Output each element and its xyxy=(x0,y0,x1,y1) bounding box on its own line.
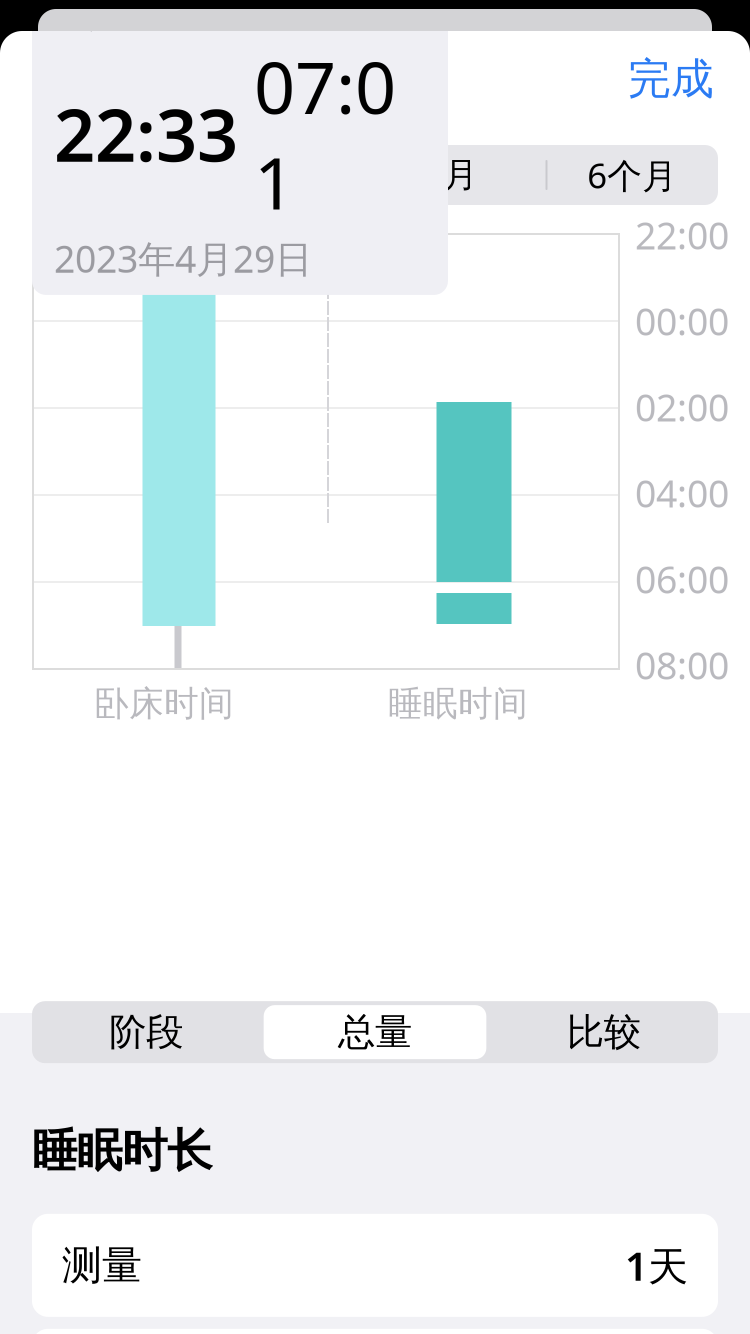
staticText: 月 xyxy=(443,154,478,196)
button[interactable]: 比较 xyxy=(489,1002,718,1062)
staticText: 08:00 xyxy=(635,640,729,690)
staticText: 日 xyxy=(100,154,135,196)
button[interactable]: 月 xyxy=(375,146,546,204)
button[interactable]: 测量 xyxy=(32,1214,718,1317)
staticText: 2023年4月29日 xyxy=(54,233,312,283)
staticText: 阶段 xyxy=(109,1009,183,1055)
staticText: 1天 xyxy=(625,1239,688,1292)
staticText: 00:00 xyxy=(635,296,729,346)
button[interactable]: 6个月 xyxy=(546,146,718,204)
staticText: 总量 xyxy=(338,1009,412,1055)
staticText: 22:00 xyxy=(635,210,729,260)
staticText: 06:00 xyxy=(635,554,729,604)
button[interactable]: 完成 xyxy=(610,41,732,117)
staticText: 卧床时间结束 xyxy=(214,0,389,36)
staticText: 22:33 xyxy=(54,86,238,182)
staticText: 周 xyxy=(272,154,307,196)
staticText: 睡眠 xyxy=(332,53,418,105)
staticText: 07:01 xyxy=(254,38,396,229)
staticText: 04:00 xyxy=(635,468,729,518)
staticText: 6个月 xyxy=(587,152,677,198)
staticText: 睡眠时长 xyxy=(32,1123,212,1179)
staticText: 测量 xyxy=(62,1241,142,1290)
button[interactable]: 阶段 xyxy=(32,1002,261,1062)
staticText: 02:00 xyxy=(635,382,729,432)
staticText: 睡眠时间 xyxy=(388,682,528,725)
button[interactable]: 总量 xyxy=(261,1002,489,1062)
staticText: 卧床时间 xyxy=(94,682,234,725)
staticText: 卧床时间开始 xyxy=(54,0,194,36)
button[interactable]: 周 xyxy=(203,146,375,204)
staticText: 完成 xyxy=(628,53,714,105)
staticText: 比较 xyxy=(567,1009,641,1055)
button[interactable]: 日 xyxy=(32,146,203,204)
